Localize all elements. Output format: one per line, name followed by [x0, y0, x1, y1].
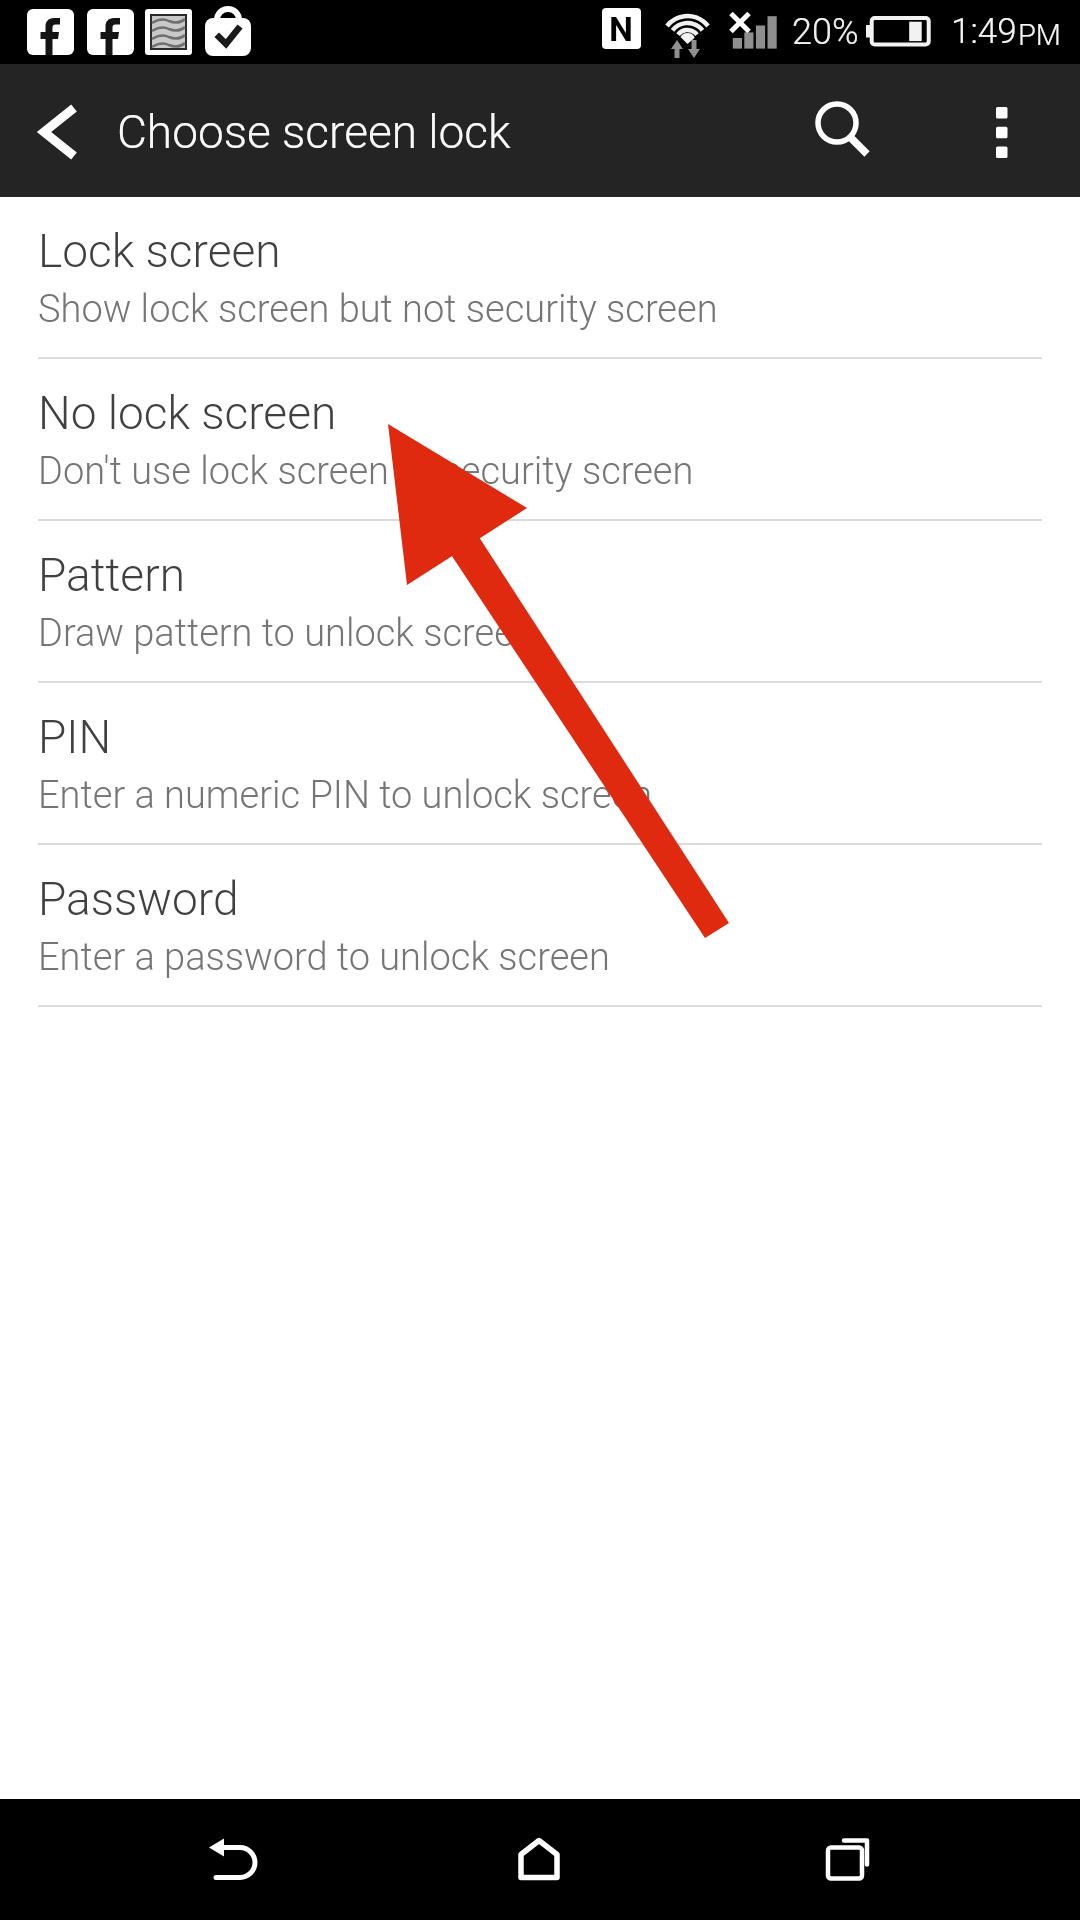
button[interactable] — [782, 86, 894, 176]
button[interactable]: Lock screen — [0, 197, 1080, 359]
staticText: Choose screen lock — [117, 105, 511, 159]
staticText: Lock screen — [38, 224, 281, 278]
button[interactable]: Password — [0, 845, 1080, 1007]
button[interactable]: Pattern — [0, 521, 1080, 683]
staticText: Password — [38, 872, 239, 926]
staticText: Enter a password to unlock screen — [38, 935, 610, 980]
button[interactable] — [469, 1799, 611, 1920]
staticText: 1:49 — [951, 11, 1017, 52]
staticText: Draw pattern to unlock screen — [38, 611, 535, 656]
staticText: Pattern — [38, 548, 185, 602]
button[interactable]: No lock screen — [0, 359, 1080, 521]
staticText: PM — [1018, 18, 1061, 52]
staticText: No lock screen — [38, 386, 337, 440]
staticText: 20% — [792, 11, 859, 53]
button[interactable]: PIN — [0, 683, 1080, 845]
button[interactable] — [950, 102, 1055, 182]
staticText: Don't use lock screen or security screen — [38, 449, 694, 494]
button[interactable] — [777, 1799, 919, 1920]
button[interactable] — [0, 64, 110, 197]
button[interactable] — [160, 1799, 302, 1920]
staticText: Enter a numeric PIN to unlock screen — [38, 773, 653, 818]
staticText: PIN — [38, 710, 112, 764]
staticText: N — [609, 9, 634, 49]
staticText: Show lock screen but not security screen — [38, 287, 718, 332]
